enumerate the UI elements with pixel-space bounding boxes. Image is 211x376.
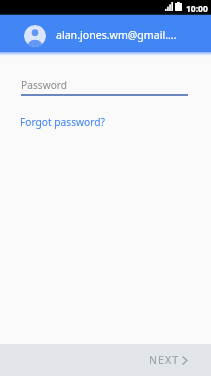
other: Account avatar [24,25,46,47]
button[interactable]: Forgot password? [13,110,112,134]
button[interactable]: Account avatar [0,15,211,52]
button[interactable]: NEXT [129,344,211,376]
other: Next [180,356,192,365]
staticText: Forgot password? [20,115,105,129]
staticText: 10:00 [186,3,208,15]
staticText: alan.jones.wm@gmail.... [56,28,177,42]
staticText: Password [21,78,68,92]
button[interactable]: Password [0,70,211,98]
staticText: NEXT [149,353,180,367]
